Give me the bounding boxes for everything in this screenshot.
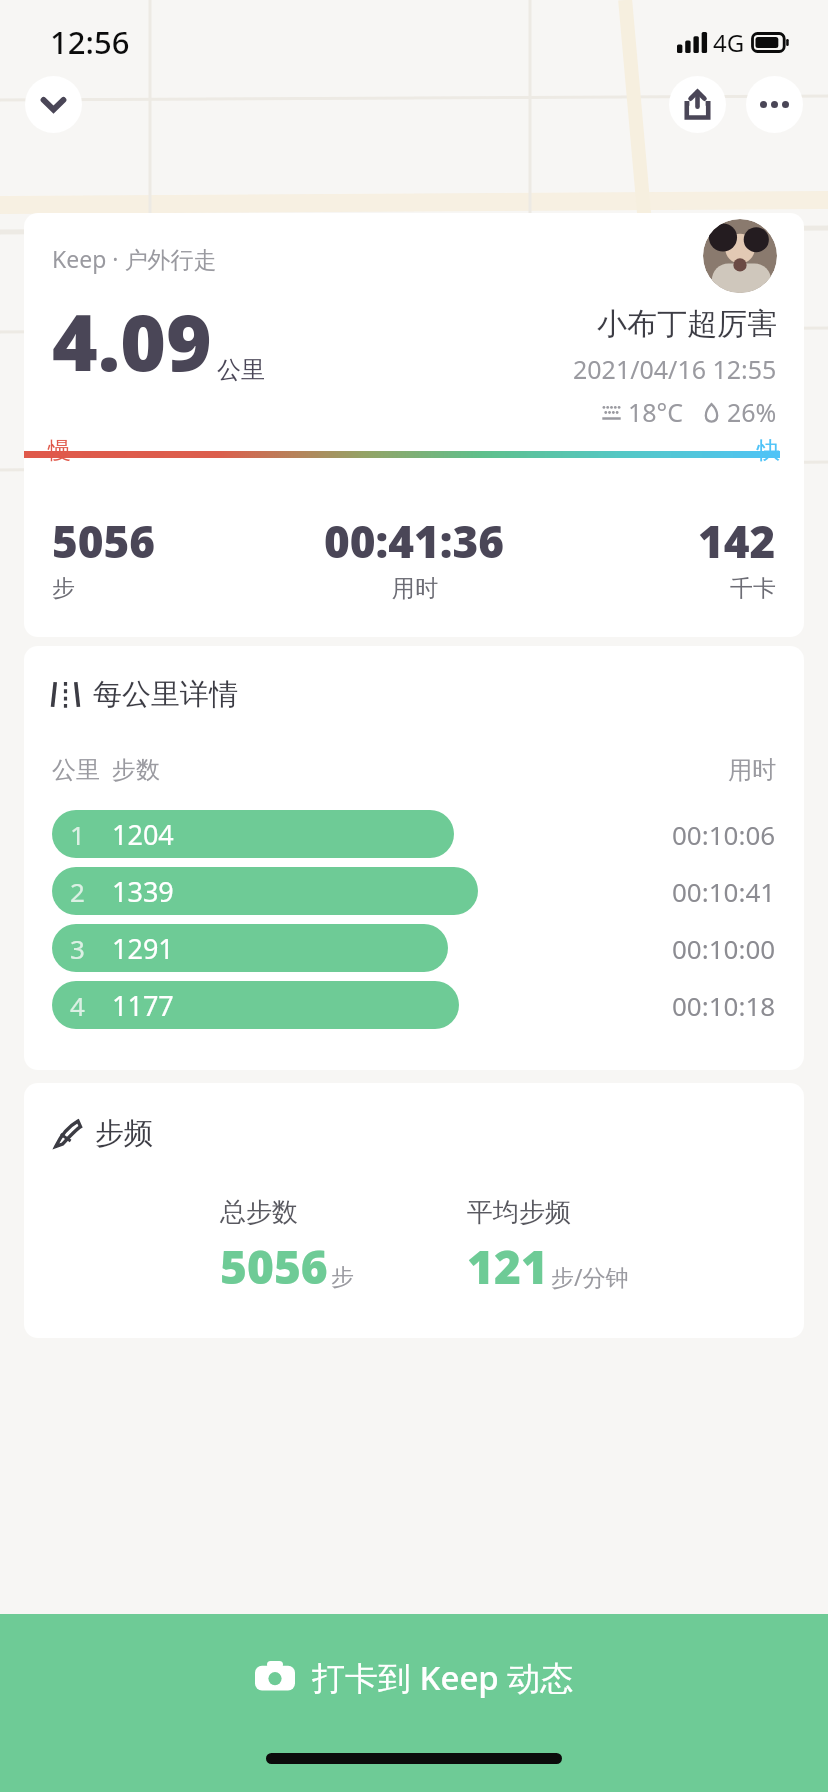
staticText: 快 [757, 436, 780, 465]
staticText: 步数 [112, 755, 160, 785]
button[interactable]: Collapse [25, 76, 82, 133]
staticText: 5056 [52, 511, 156, 571]
staticText: 121 [467, 1235, 548, 1298]
staticText: 2021/04/16 12:55 [573, 352, 777, 386]
staticText: 打卡到 Keep 动态 [312, 1655, 574, 1700]
staticText: 公里 [217, 355, 265, 385]
staticText: 用时 [392, 574, 438, 603]
staticText: 4G [713, 26, 745, 59]
staticText: 每公里详情 [93, 676, 238, 713]
staticText: 慢 [48, 436, 71, 465]
button[interactable]: 1 [52, 809, 776, 859]
staticText: 12:56 [50, 21, 130, 63]
button[interactable]: 打卡到 Keep 动态 [0, 1614, 828, 1740]
button[interactable]: Share [669, 76, 726, 133]
button[interactable]: 每公里详情 [24, 646, 804, 1070]
staticText: 4 [70, 988, 85, 1023]
staticText: 3 [70, 931, 85, 966]
button[interactable]: 步频 [24, 1083, 804, 1338]
staticText: 5056 [220, 1235, 328, 1298]
staticText: 00:10:00 [672, 931, 776, 966]
staticText: 平均步频 [467, 1196, 571, 1229]
staticText: 1339 [112, 873, 174, 910]
staticText: 小布丁超厉害 [597, 305, 777, 343]
button[interactable]: 2 [52, 866, 776, 916]
button[interactable]: 3 [52, 923, 776, 973]
staticText: 总步数 [220, 1196, 298, 1229]
button[interactable]: Profile photo [703, 219, 777, 293]
staticText: 00:10:06 [672, 817, 776, 852]
staticText: 00:10:18 [672, 988, 776, 1023]
staticText: 1291 [112, 930, 174, 967]
staticText: 26% [727, 395, 777, 429]
button[interactable]: Keep · 户外行走 [24, 213, 804, 637]
staticText: 00:10:41 [672, 874, 776, 909]
staticText: 千卡 [730, 574, 776, 603]
staticText: Keep · 户外行走 [52, 243, 217, 274]
staticText: 00:41:36 [324, 511, 505, 571]
staticText: 步/分钟 [551, 1261, 629, 1292]
staticText: 142 [698, 511, 776, 571]
staticText: 1204 [112, 816, 174, 853]
button[interactable]: More options [746, 76, 803, 133]
staticText: 18°C [628, 395, 684, 429]
staticText: 步频 [95, 1115, 153, 1152]
staticText: 步 [331, 1263, 354, 1292]
staticText: 公里 [52, 755, 100, 785]
staticText: 1 [70, 817, 85, 852]
staticText: 用时 [728, 755, 776, 785]
staticText: 步 [52, 574, 75, 603]
staticText: 2 [70, 874, 85, 909]
staticText: 4.09 [52, 288, 212, 394]
staticText: 1177 [112, 987, 174, 1024]
button[interactable]: 4 [52, 980, 776, 1030]
